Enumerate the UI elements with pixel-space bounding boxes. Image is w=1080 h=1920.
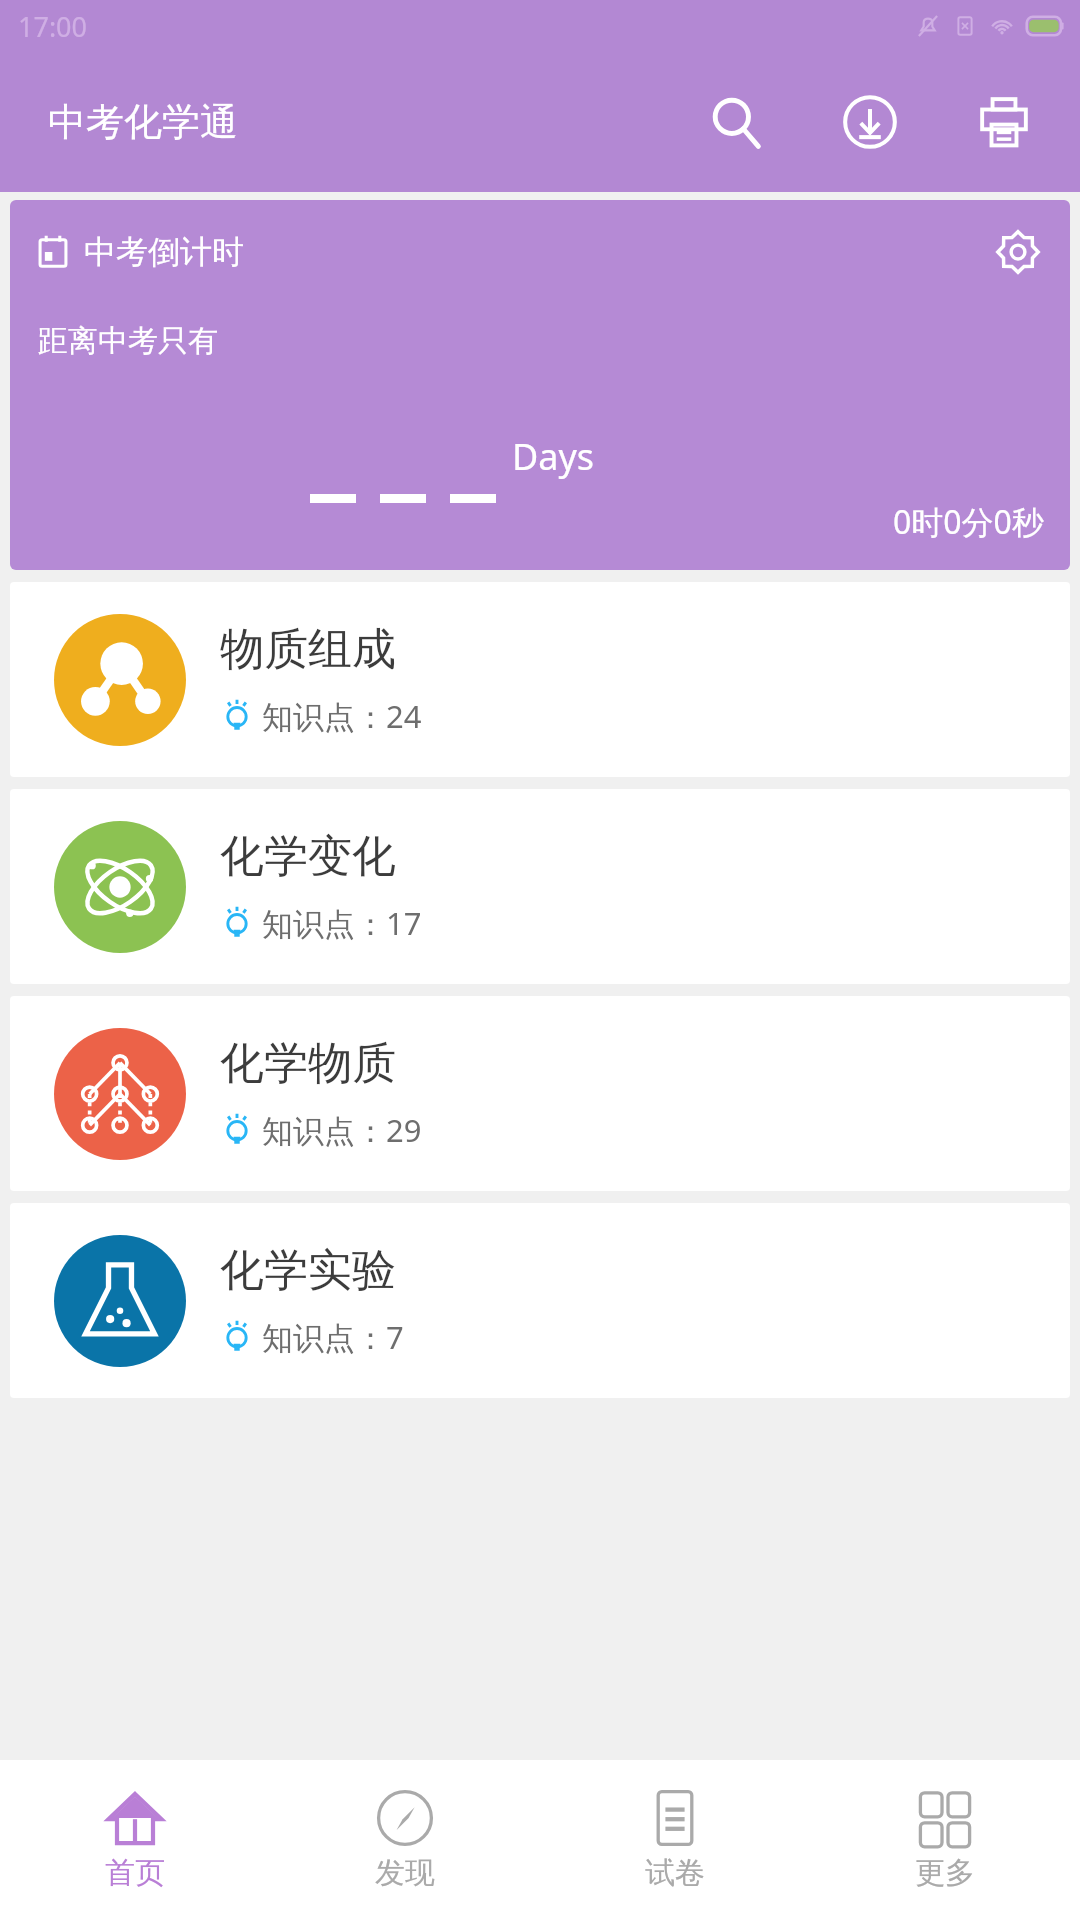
staticText: 知识点：24 xyxy=(262,695,422,737)
staticText: 更多 xyxy=(915,1854,975,1892)
button[interactable]: 化学物质 xyxy=(10,996,1070,1191)
staticText: 首页 xyxy=(105,1854,165,1892)
button[interactable]: 中考倒计时 xyxy=(10,200,1070,570)
button[interactable]: Search xyxy=(700,86,772,158)
staticText: 17:00 xyxy=(18,8,88,45)
button[interactable]: 发现 xyxy=(270,1760,540,1920)
button[interactable]: 首页 xyxy=(0,1760,270,1920)
staticText: 中考化学通 xyxy=(48,98,238,146)
staticText: 发现 xyxy=(375,1854,435,1892)
button[interactable]: Print xyxy=(968,86,1040,158)
staticText: 中考倒计时 xyxy=(84,232,244,272)
staticText: 0时0分0秒 xyxy=(893,500,1044,544)
staticText: 知识点：17 xyxy=(262,902,422,944)
button[interactable]: 化学变化 xyxy=(10,789,1070,984)
staticText: 知识点：29 xyxy=(262,1109,422,1151)
staticText: 试卷 xyxy=(645,1854,705,1892)
staticText: 距离中考只有 xyxy=(38,322,218,360)
staticText: 化学实验 xyxy=(220,1243,396,1298)
staticText: 知识点：7 xyxy=(262,1316,404,1358)
button[interactable]: 试卷 xyxy=(540,1760,810,1920)
staticText: 化学变化 xyxy=(220,829,396,884)
button[interactable]: 更多 xyxy=(810,1760,1080,1920)
staticText: 物质组成 xyxy=(220,622,396,677)
button[interactable]: 化学实验 xyxy=(10,1203,1070,1398)
button[interactable]: Settings xyxy=(992,226,1044,278)
staticText: Days xyxy=(512,432,595,481)
button[interactable]: 物质组成 xyxy=(10,582,1070,777)
button[interactable]: Download xyxy=(834,86,906,158)
staticText: 化学物质 xyxy=(220,1036,396,1091)
